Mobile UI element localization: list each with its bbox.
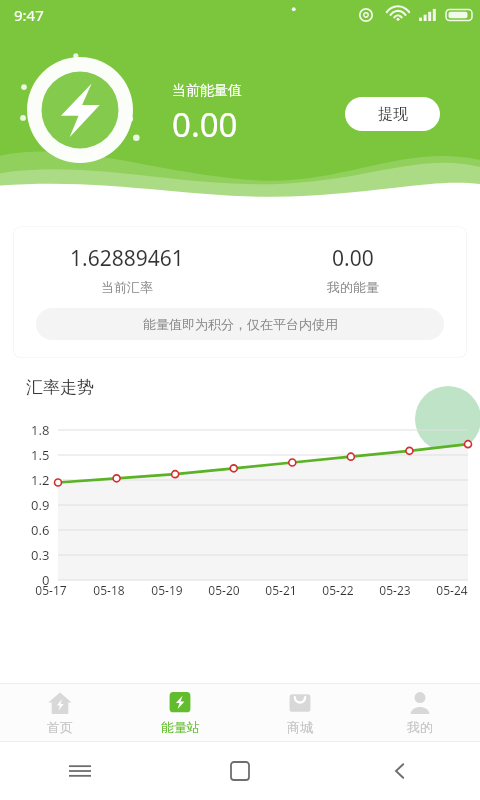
button[interactable]: 首页 [0,684,120,741]
staticText: 0 [42,571,50,589]
button[interactable]: Back [390,761,410,781]
staticText: 05-19 [151,582,183,598]
button[interactable]: Menu [69,760,91,782]
staticText: 05-17 [35,582,67,598]
staticText: 05-18 [93,582,125,598]
staticText: 0.00 [172,102,238,147]
staticText: 05-23 [379,582,411,598]
staticText: 1.5 [31,446,50,464]
staticText: 0.00 [332,244,374,273]
button[interactable]: 1.62889461 [14,227,466,357]
staticText: 当前汇率 [101,279,153,295]
button[interactable]: 我的 [360,684,480,741]
staticText: 能量站 [161,719,200,735]
staticText: 05-21 [265,582,297,598]
staticText: 我的能量 [327,279,379,295]
button[interactable]: 商城 [240,684,360,741]
staticText: 当前能量值 [172,82,242,100]
staticText: 汇率走势 [26,377,94,398]
staticText: 首页 [47,719,73,735]
button[interactable]: 能量站 [120,684,240,741]
staticText: 9:47 [14,5,44,25]
staticText: 05-24 [436,582,468,598]
staticText: 1.2 [31,471,50,489]
staticText: 0.6 [31,521,50,539]
staticText: 05-20 [208,582,240,598]
button[interactable]: 提现 [345,97,440,131]
staticText: 1.62889461 [70,244,184,273]
staticText: 0.9 [31,496,50,514]
button[interactable]: Home [230,761,250,781]
staticText: 提现 [378,105,408,124]
staticText: 1.8 [31,421,50,439]
staticText: 商城 [287,719,313,735]
staticText: 我的 [407,719,433,735]
staticText: 05-22 [322,582,354,598]
staticText: 能量值即为积分，仅在平台内使用 [143,316,338,332]
staticText: 0.3 [31,546,50,564]
